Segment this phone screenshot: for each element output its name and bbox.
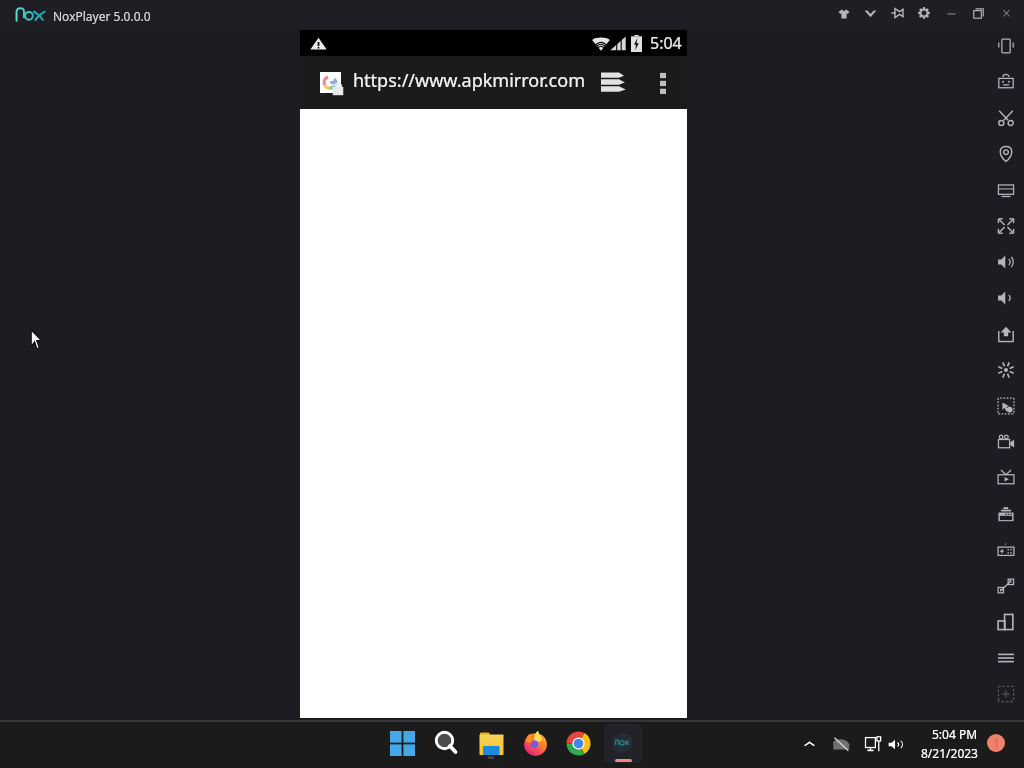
button[interactable]: Start	[382, 723, 422, 763]
button[interactable]: Multi instance	[987, 676, 1024, 712]
button[interactable]: Location	[987, 136, 1024, 172]
button[interactable]: Full screen	[987, 208, 1024, 244]
button[interactable]: Record	[987, 424, 1024, 460]
button[interactable]: Volume up	[987, 244, 1024, 280]
staticText: https://www.apkmirror.com	[353, 68, 585, 93]
button[interactable]: Volume	[882, 730, 910, 758]
button[interactable]: Video	[987, 460, 1024, 496]
button[interactable]: Minimise	[938, 0, 964, 28]
button[interactable]: Site information	[316, 69, 344, 97]
button[interactable]: Volume down	[987, 280, 1024, 316]
button[interactable]: NoxPlayer	[604, 724, 642, 763]
button[interactable]: Gamepad	[987, 532, 1024, 568]
staticText: NoxPlayer 5.0.0.0	[53, 8, 151, 24]
button[interactable]: Multi touch	[987, 388, 1024, 424]
button[interactable]: Search	[426, 723, 466, 763]
button[interactable]: Resize	[987, 568, 1024, 604]
button[interactable]: Toolbox	[987, 496, 1024, 532]
button[interactable]: Cut	[987, 100, 1024, 136]
button[interactable]: Macro	[987, 64, 1024, 100]
staticText: 5:04	[650, 32, 682, 54]
button[interactable]: Shake	[987, 28, 1024, 64]
button[interactable]: Tabs	[597, 67, 629, 98]
button[interactable]: Chrome	[558, 723, 598, 763]
button[interactable]: Notifications	[987, 734, 1005, 752]
button[interactable]: Show hidden icons	[795, 730, 823, 758]
button[interactable]: More	[857, 0, 883, 28]
button[interactable]: Dress up	[831, 0, 857, 28]
button[interactable]: Install APK	[987, 316, 1024, 352]
button[interactable]: Display	[859, 730, 887, 758]
button[interactable]: Network	[827, 730, 855, 758]
button[interactable]: File Explorer	[471, 723, 511, 763]
button[interactable]: Pin	[884, 0, 910, 28]
button[interactable]: Performance	[987, 604, 1024, 640]
staticText: 1	[993, 735, 1000, 751]
button[interactable]: Firefox	[515, 723, 555, 763]
button[interactable]: 5:04 PM	[919, 726, 978, 761]
button[interactable]: Settings	[911, 0, 937, 28]
button[interactable]: Maximise	[965, 0, 991, 28]
button[interactable]: Close	[993, 0, 1019, 28]
button[interactable]: Keyboard	[987, 172, 1024, 208]
button[interactable]: Menu	[987, 640, 1024, 676]
staticText: 8/21/2023	[921, 745, 978, 761]
staticText: 5:04 PM	[932, 726, 978, 742]
button[interactable]: Shortcut	[987, 352, 1024, 388]
button[interactable]: More options	[650, 67, 676, 98]
